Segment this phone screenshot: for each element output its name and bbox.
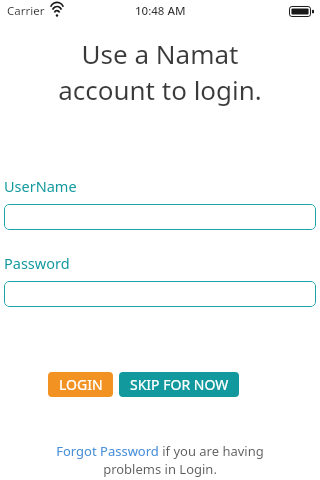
staticText: Carrier bbox=[7, 3, 45, 19]
staticText: Password bbox=[4, 253, 70, 273]
staticText: LOGIN bbox=[59, 375, 103, 394]
button[interactable] bbox=[4, 281, 316, 307]
button[interactable]: LOGIN bbox=[48, 372, 113, 397]
button[interactable]: Forgot Password if you are having proble… bbox=[0, 442, 320, 478]
staticText: Use a Namat account to login. bbox=[0, 36, 320, 108]
button[interactable] bbox=[4, 204, 316, 230]
staticText: SKIP FOR NOW bbox=[130, 375, 229, 394]
staticText: UserName bbox=[4, 176, 77, 196]
staticText: Forgot Password if you are having proble… bbox=[30, 442, 290, 478]
button[interactable]: SKIP FOR NOW bbox=[119, 372, 239, 397]
staticText: 10:48 AM bbox=[135, 3, 186, 19]
